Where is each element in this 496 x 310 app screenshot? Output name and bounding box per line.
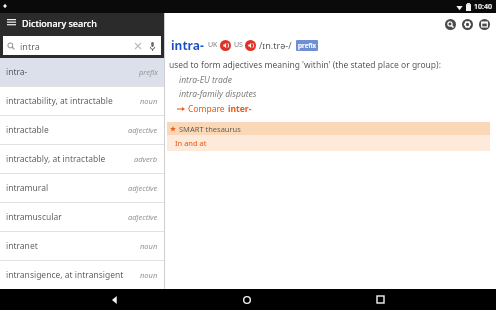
staticText: intra-family disputes [179,88,257,100]
button[interactable]: intramural [0,174,164,202]
staticText: Compare [188,103,225,115]
button[interactable]: In and at [175,138,207,148]
button[interactable]: Back [98,289,132,310]
button[interactable]: Home [230,289,264,310]
button[interactable]: intranet [0,232,164,260]
staticText: intra-EU trade [179,74,232,86]
button[interactable]: intractable [0,116,164,144]
staticText: intra [20,40,131,52]
staticText: noun [140,270,158,280]
button[interactable]: Open navigation drawer [0,13,22,32]
staticText: SMART thesaurus [179,124,241,134]
button[interactable]: intractability, at intractable [0,87,164,115]
button[interactable]: Compare [177,103,252,115]
button[interactable]: intra- [0,58,164,86]
staticText: intractability, at intractable [6,95,138,107]
staticText: In and at [175,138,207,148]
button[interactable]: SMART thesaurus [167,122,490,135]
staticText: intractable [6,124,126,136]
button[interactable]: Settings [462,19,473,30]
staticText: intramuscular [6,211,126,223]
staticText: intramural [6,182,126,194]
staticText: Dictionary search [22,17,97,29]
button[interactable]: Search in entry [445,19,456,30]
staticText: prefix [139,67,158,77]
button[interactable]: intramuscular [0,203,164,231]
staticText: US [234,40,243,50]
staticText: adverb [134,154,158,164]
staticText: inter- [228,103,252,115]
staticText: adjective [128,183,158,193]
button[interactable]: intransigence, at intransigent [0,261,164,289]
staticText: 10:40 [474,2,492,12]
staticText: intranet [6,240,138,252]
staticText: noun [140,96,158,106]
button[interactable]: Voice search [145,39,159,53]
staticText: adjective [128,212,158,222]
button[interactable]: Recent apps [363,289,397,310]
button[interactable]: Clear search [131,39,145,53]
staticText: intractably, at intractable [6,153,132,165]
button[interactable]: More options [479,19,490,30]
button[interactable]: Open navigation drawer [0,13,164,32]
staticText: noun [140,241,158,251]
staticText: /ɪn.trə-/ [259,39,292,51]
button[interactable]: Play UK pronunciation [220,40,231,51]
staticText: UK [208,40,218,50]
staticText: prefix [298,41,316,50]
staticText: intra- [171,37,204,53]
staticText: used to form adjectives meaning 'within'… [169,59,441,71]
button[interactable]: intractably, at intractable [0,145,164,173]
button[interactable]: intra- [171,37,496,53]
staticText: intra- [6,66,137,78]
staticText: intransigence, at intransigent [6,269,138,281]
button[interactable]: intra [3,36,161,55]
staticText: adjective [128,125,158,135]
button[interactable]: Play US pronunciation [245,40,256,51]
